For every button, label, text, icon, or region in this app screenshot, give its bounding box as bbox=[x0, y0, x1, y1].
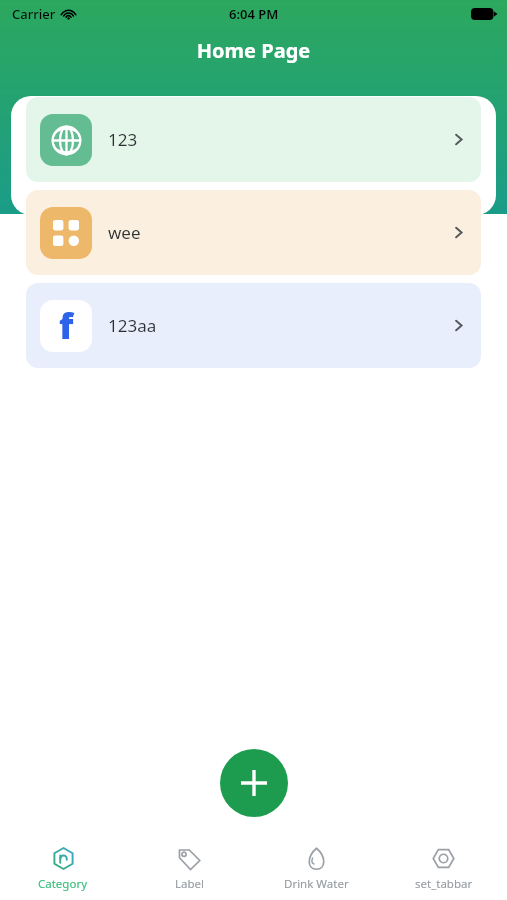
button[interactable]: f bbox=[26, 283, 481, 368]
staticText: 6:04 PM bbox=[229, 5, 279, 23]
staticText: set_tabbar bbox=[415, 876, 473, 892]
button[interactable]: Label bbox=[126, 838, 253, 900]
button[interactable]: Category bbox=[0, 838, 126, 900]
button[interactable]: wee bbox=[26, 190, 481, 275]
staticText: Category bbox=[38, 876, 88, 892]
button[interactable]: Add category bbox=[220, 749, 288, 817]
button[interactable]: 123 bbox=[26, 97, 481, 182]
staticText: 123aa bbox=[108, 314, 157, 337]
staticText: wee bbox=[108, 221, 141, 244]
staticText: Label bbox=[175, 876, 205, 892]
staticText: Carrier bbox=[12, 5, 56, 23]
staticText: f bbox=[59, 302, 74, 350]
staticText: Home Page bbox=[0, 37, 507, 64]
staticText: 123 bbox=[108, 128, 138, 151]
button[interactable]: set_tabbar bbox=[380, 838, 507, 900]
button[interactable]: Drink Water bbox=[253, 838, 380, 900]
staticText: Drink Water bbox=[284, 876, 349, 892]
